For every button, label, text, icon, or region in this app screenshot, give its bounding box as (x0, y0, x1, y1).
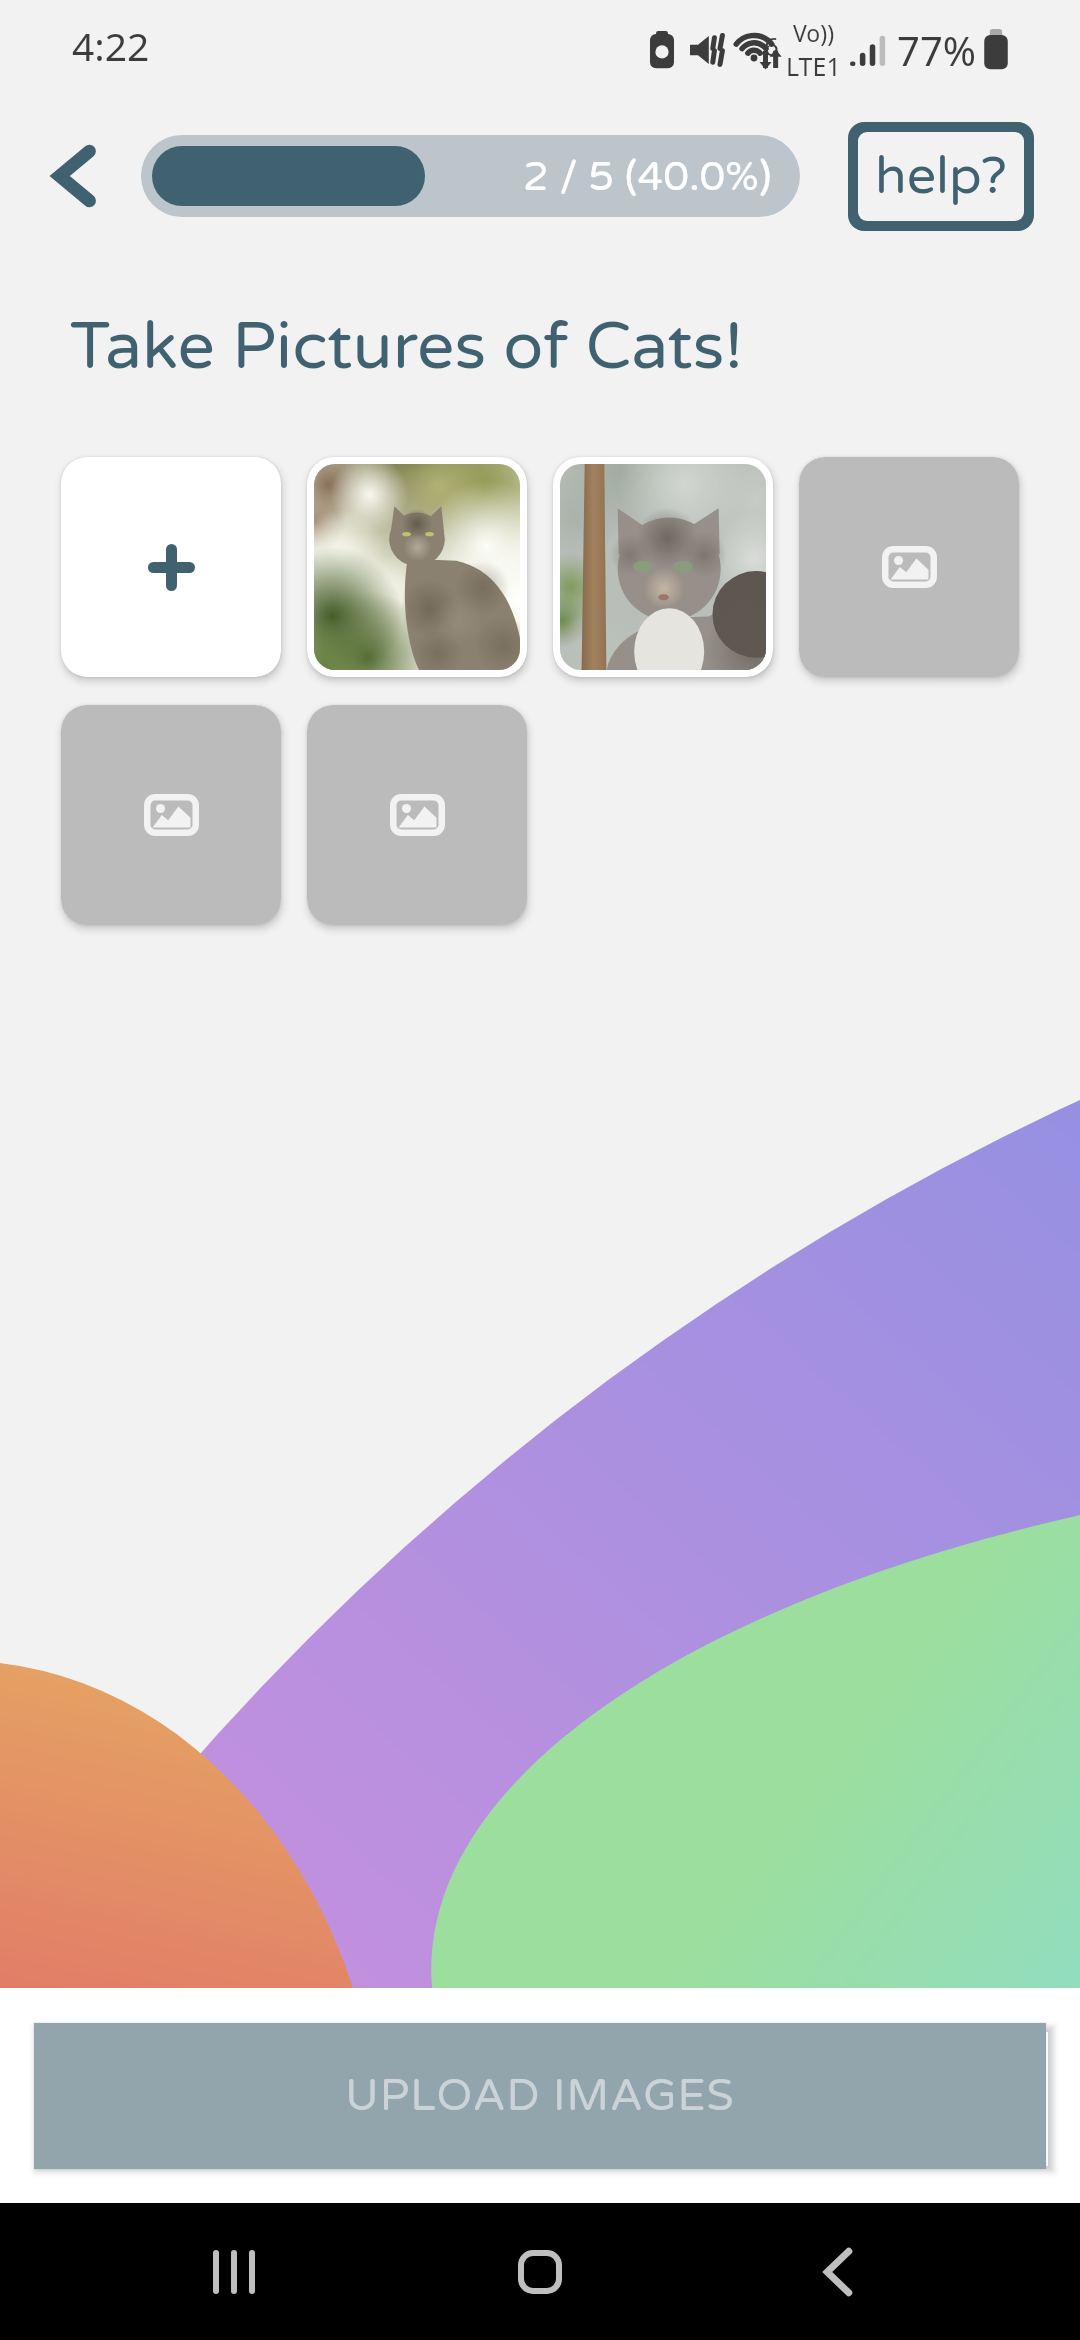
staticText: UPLOAD IMAGES (345, 2070, 735, 2123)
button[interactable]: Home (495, 2227, 585, 2317)
staticText: Vo)) (793, 17, 835, 48)
button[interactable]: Cat photo (314, 464, 520, 670)
button[interactable]: help? (858, 132, 1024, 221)
button[interactable]: Back (793, 2227, 883, 2317)
button[interactable]: Empty photo slot (61, 705, 281, 925)
staticText: 4:22 (72, 19, 150, 72)
button[interactable]: Back (39, 141, 109, 211)
button[interactable]: Empty photo slot (307, 705, 527, 925)
staticText: Take Pictures of Cats! (70, 307, 744, 386)
button[interactable]: Cat photo (560, 464, 766, 670)
staticText: LTE1 (786, 49, 841, 83)
button[interactable]: Empty photo slot (799, 457, 1019, 677)
staticText: help? (875, 145, 1008, 208)
staticText: 2 / 5 (40.0%) (523, 152, 772, 201)
button[interactable]: Recent apps (188, 2227, 278, 2317)
button[interactable]: Add photo (61, 457, 281, 677)
button[interactable]: 2 / 5 (40.0%) (141, 135, 800, 217)
staticText: 6 (764, 28, 779, 63)
staticText: 77% (897, 23, 976, 77)
button[interactable]: UPLOAD IMAGES (34, 2023, 1046, 2169)
